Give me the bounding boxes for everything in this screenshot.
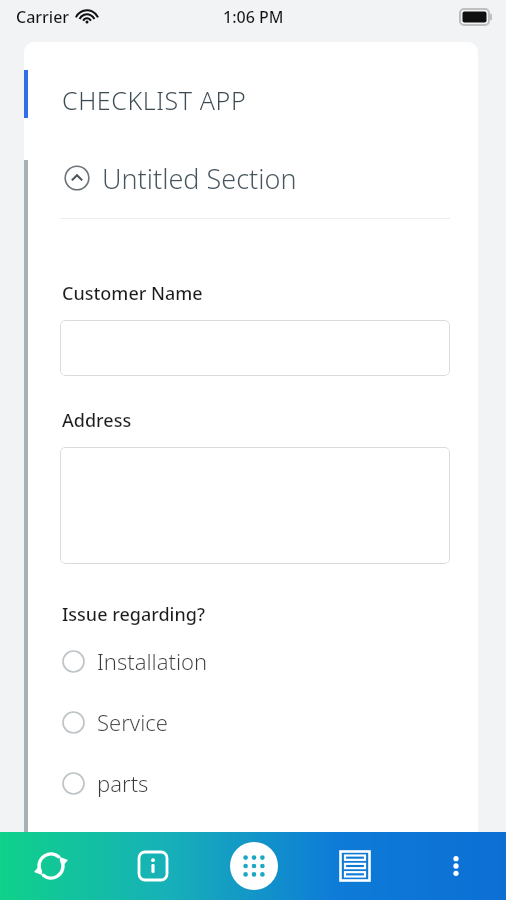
button[interactable]: Apps: [203, 832, 304, 900]
button[interactable]: [60, 320, 450, 376]
staticText: 1:06 PM: [223, 6, 284, 28]
button[interactable]: Info: [102, 832, 203, 900]
staticText: Customer Name: [62, 281, 203, 306]
staticText: Issue regarding?: [62, 602, 205, 627]
staticText: Untitled Section: [102, 160, 297, 197]
button[interactable]: Collapse section: [0, 154, 506, 202]
other: Collapse section: [64, 165, 90, 191]
button[interactable]: CHECKLIST APP: [0, 74, 506, 126]
staticText: Carrier: [16, 6, 70, 28]
staticText: parts: [97, 768, 149, 798]
button[interactable]: Sync: [0, 832, 102, 900]
staticText: Installation: [97, 646, 208, 676]
button[interactable]: List: [304, 832, 405, 900]
staticText: CHECKLIST APP: [62, 83, 247, 117]
button[interactable]: Installation: [62, 645, 208, 677]
button[interactable]: More options: [405, 832, 506, 900]
staticText: Address: [62, 408, 132, 433]
button[interactable]: Service: [62, 706, 168, 738]
button[interactable]: parts: [62, 767, 149, 799]
button[interactable]: [60, 447, 450, 564]
staticText: Service: [97, 707, 168, 737]
